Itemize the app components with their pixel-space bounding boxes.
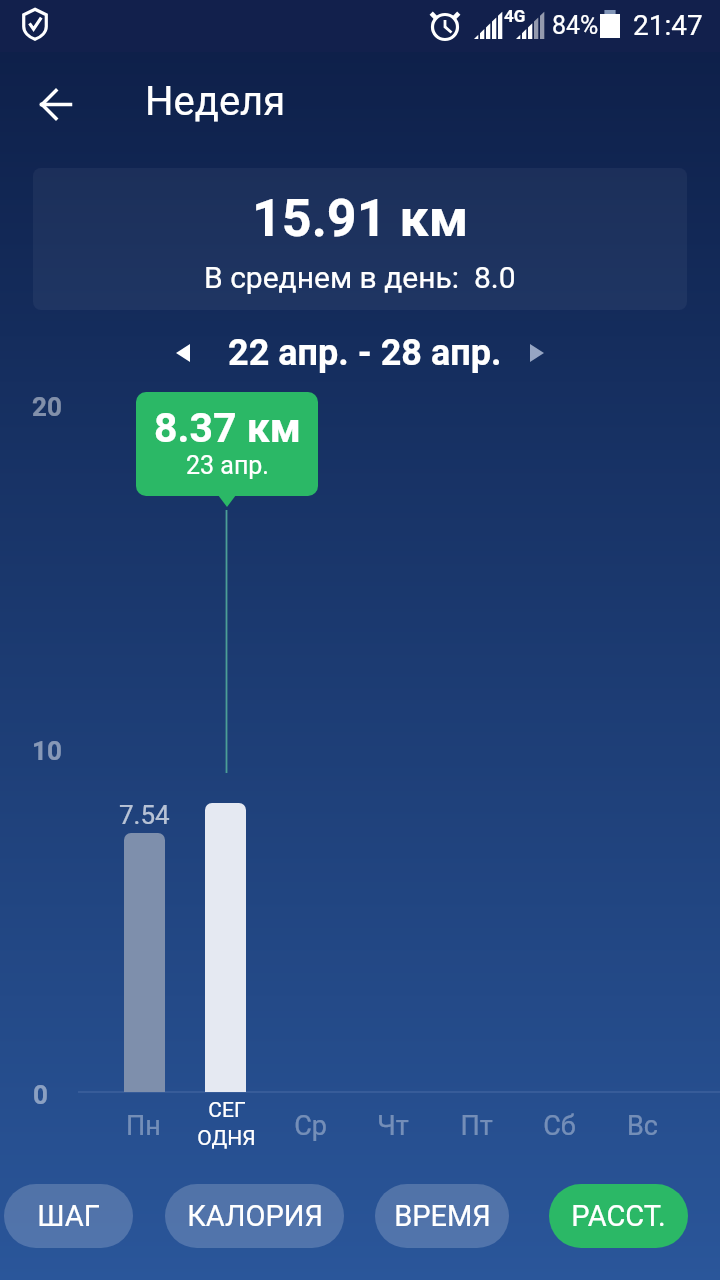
button[interactable]: Next week bbox=[513, 329, 561, 377]
staticText: 22 апр. - 28 апр. bbox=[228, 332, 502, 374]
button[interactable]: Previous week bbox=[159, 329, 207, 377]
staticText: Пт bbox=[460, 1110, 493, 1142]
staticText: 7.54 bbox=[119, 800, 170, 830]
button[interactable]: Пн bbox=[98, 1110, 188, 1150]
button[interactable]: ВРЕМЯ bbox=[375, 1184, 509, 1248]
staticText: 0 bbox=[33, 1080, 48, 1110]
button[interactable]: РАССТ. bbox=[549, 1184, 688, 1248]
staticText: 20 bbox=[32, 392, 62, 422]
staticText: РАССТ. bbox=[571, 1199, 666, 1233]
staticText: Ср bbox=[294, 1110, 327, 1142]
staticText: ОДНЯ bbox=[197, 1126, 256, 1151]
staticText: 23 апр. bbox=[186, 451, 269, 480]
staticText: 15.91 км bbox=[252, 188, 469, 249]
staticText: ШАГ bbox=[37, 1199, 100, 1233]
staticText: Чт bbox=[377, 1110, 409, 1142]
staticText: КАЛОРИЯ bbox=[187, 1199, 323, 1233]
button[interactable]: Чт bbox=[348, 1110, 438, 1150]
staticText: Пн bbox=[126, 1110, 161, 1142]
staticText: Вс bbox=[627, 1110, 658, 1142]
button[interactable]: Пт bbox=[431, 1110, 521, 1150]
button[interactable]: 8.37 км bbox=[136, 392, 318, 496]
staticText: В среднем в день: 8.0 bbox=[204, 260, 516, 295]
button[interactable]: СЕГ bbox=[176, 1098, 276, 1156]
button[interactable]: 15.91 км bbox=[33, 168, 687, 310]
staticText: 4G bbox=[504, 6, 526, 26]
staticText: СЕГ bbox=[208, 1098, 246, 1123]
staticText: Сб bbox=[543, 1110, 576, 1142]
button[interactable]: Back bbox=[24, 72, 88, 136]
staticText: 8.37 км bbox=[154, 404, 301, 452]
staticText: 84% bbox=[552, 11, 599, 40]
staticText: ВРЕМЯ bbox=[394, 1199, 491, 1233]
button[interactable]: Сб bbox=[514, 1110, 604, 1150]
staticText: Неделя bbox=[145, 78, 286, 125]
staticText: 10 bbox=[32, 736, 62, 766]
button[interactable]: Ср bbox=[265, 1110, 355, 1150]
staticText: 21:47 bbox=[633, 9, 703, 42]
button[interactable]: КАЛОРИЯ bbox=[165, 1184, 344, 1248]
button[interactable]: ШАГ bbox=[4, 1184, 133, 1248]
button[interactable]: Вс bbox=[597, 1110, 687, 1150]
